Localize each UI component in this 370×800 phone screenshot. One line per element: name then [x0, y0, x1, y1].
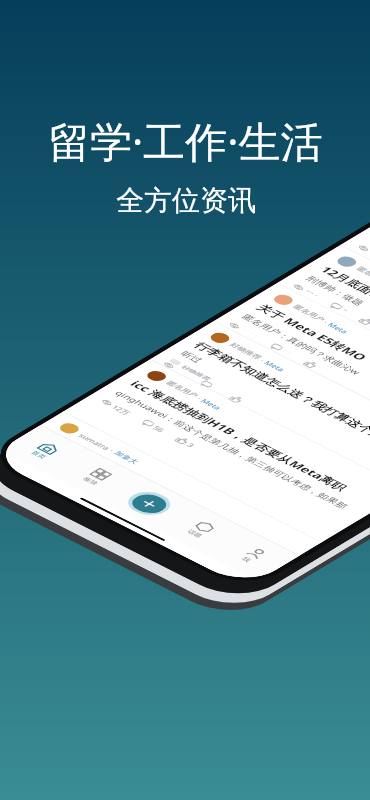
button[interactable]: 匿名用户 [206, 279, 370, 456]
staticText: 首页 [29, 449, 49, 460]
staticText: 好物推荐 [227, 341, 265, 361]
staticText: 3 [185, 441, 198, 449]
staticText: 匿名用户 [290, 303, 328, 323]
staticText: 12万 [109, 403, 134, 417]
staticText: · [319, 317, 334, 327]
staticText: 匿名用户 [354, 265, 370, 285]
staticText: · [105, 446, 120, 455]
staticText: · [192, 393, 207, 403]
staticText: 2分钟前 [28, 439, 70, 462]
staticText: 56 [150, 424, 168, 434]
staticText: 面试官：聊聊项目 [366, 234, 370, 278]
staticText: 531 [305, 288, 321, 297]
button[interactable]: 匿名用户 [55, 353, 370, 548]
staticText: 12月底面试 [315, 263, 370, 303]
button[interactable]: 首页 [21, 436, 69, 465]
staticText: 加拿大 [111, 449, 142, 466]
staticText: icc 海底捞抽到H1B，是否要从Meta离职 [119, 377, 359, 494]
staticText: sumatra [76, 431, 114, 452]
staticText: 匿名用户：真的吗？求曲沁w [235, 312, 368, 377]
staticText: Meta [198, 397, 225, 412]
button[interactable]: New post [125, 489, 174, 518]
staticText: 5 [343, 307, 351, 312]
button[interactable]: sumatra [3, 408, 330, 577]
staticText: 关于 Meta E5转MO [250, 301, 370, 364]
staticText: 刑博帅：做题 [301, 273, 368, 308]
button[interactable]: 我 [229, 541, 277, 570]
button[interactable]: 话题 [177, 515, 225, 544]
button[interactable]: 匿名用户 [269, 241, 370, 418]
button[interactable]: 匿名用户 [332, 202, 370, 380]
staticText: 好物推荐 [180, 364, 214, 381]
staticText: Meta [262, 359, 289, 374]
staticText: qinghuawei：前这个是第几抽，第三抽可以考虑，如果那 [105, 388, 359, 511]
staticText: · [256, 355, 271, 365]
staticText: 板块 [81, 475, 101, 487]
staticText: 全方位资讯 [116, 183, 256, 218]
staticText: 匿名用户 [164, 379, 202, 399]
staticText: 我 [240, 555, 253, 564]
staticText: Meta [325, 320, 352, 336]
staticText: 听过 [177, 349, 206, 365]
staticText: 话题 [185, 528, 205, 539]
staticText: 找工作求内推 [38, 430, 125, 474]
button[interactable]: 板块 [73, 462, 121, 491]
button[interactable]: 好物推荐 [142, 317, 370, 494]
staticText: 行李箱不知道怎么送？我打算这个牌子的 [184, 339, 370, 454]
staticText: 留学·工作·生活 [48, 112, 323, 169]
